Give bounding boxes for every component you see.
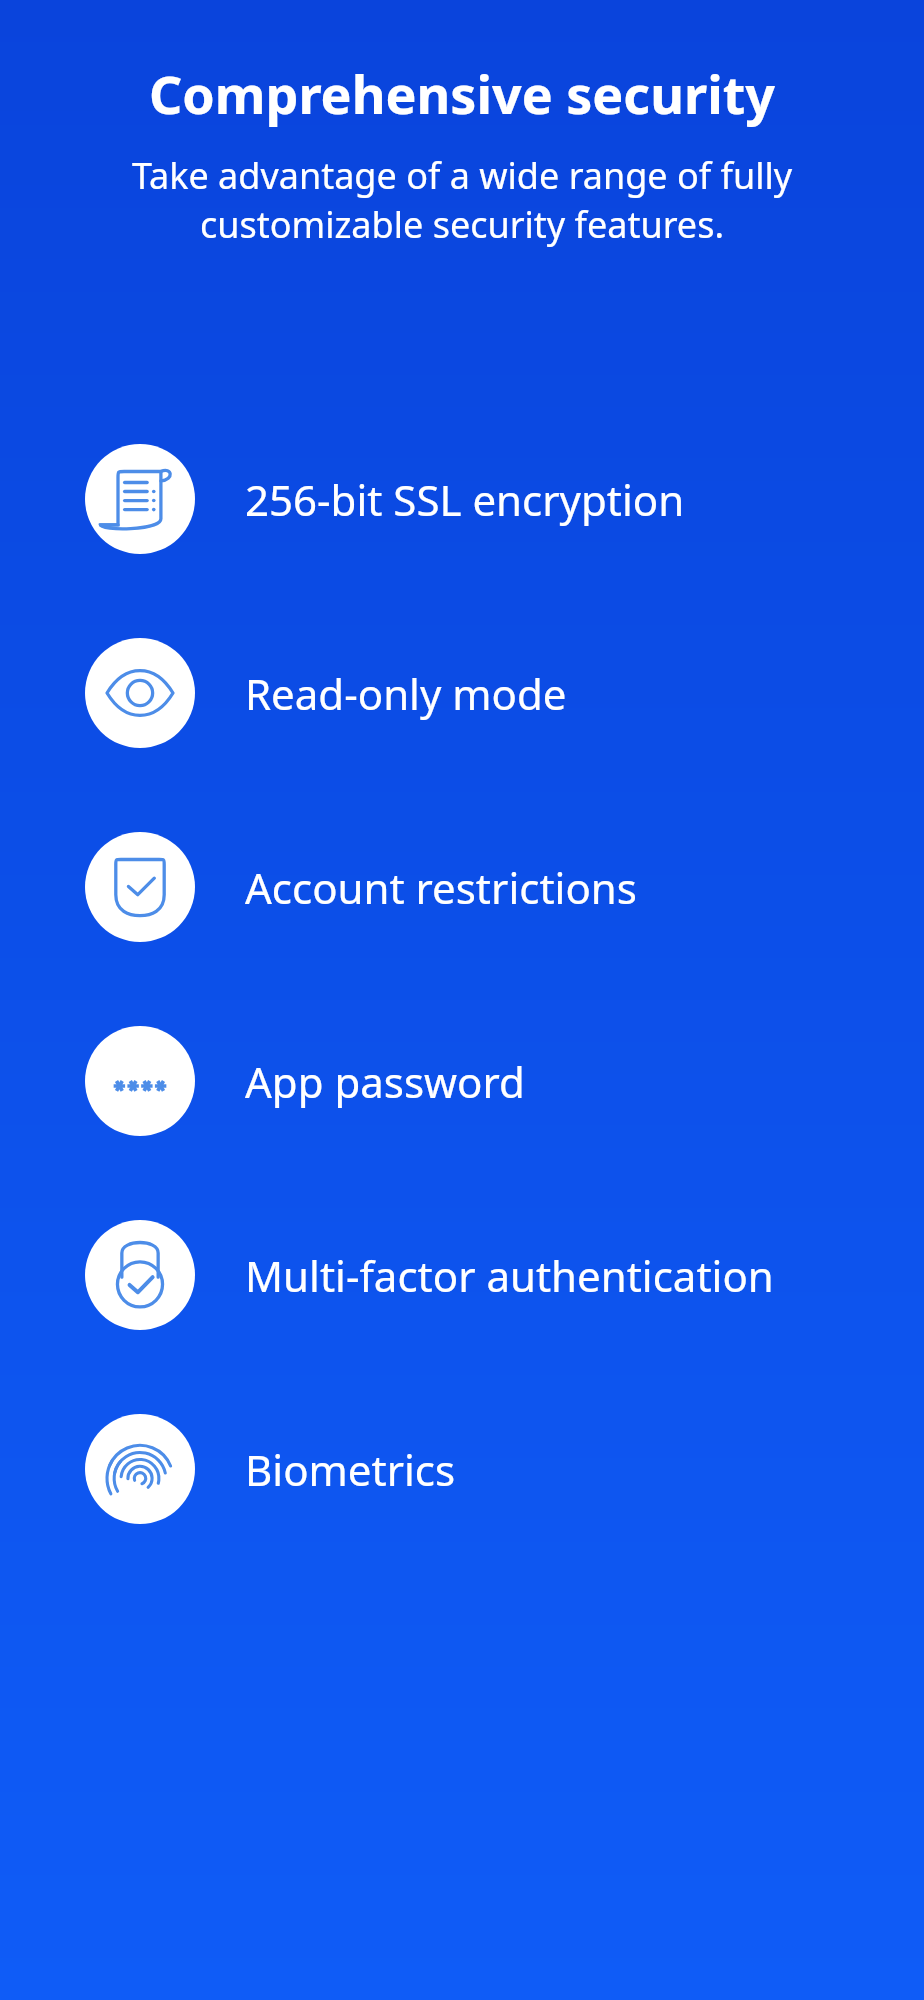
button[interactable]: Biometrics icon [0, 1414, 924, 1524]
staticText: App password [245, 1053, 525, 1110]
other: App password icon [85, 1026, 195, 1136]
other: Account restrictions icon [85, 832, 195, 942]
other: Multi-factor authentication icon [85, 1220, 195, 1330]
button[interactable]: Multi-factor authentication icon [0, 1220, 924, 1330]
other: 256-bit SSL encryption icon [85, 444, 195, 554]
staticText: Multi-factor authentication [245, 1247, 774, 1304]
button[interactable]: Read-only mode icon [0, 638, 924, 748]
button[interactable]: 256-bit SSL encryption icon [0, 444, 924, 554]
staticText: Comprehensive security [24, 58, 900, 129]
button[interactable]: Account restrictions icon [0, 832, 924, 942]
other: Read-only mode icon [85, 638, 195, 748]
other: Biometrics icon [85, 1414, 195, 1524]
staticText: Account restrictions [245, 859, 637, 916]
staticText: Read-only mode [245, 665, 567, 722]
staticText: Take advantage of a wide range of fully … [40, 151, 884, 248]
staticText: Biometrics [245, 1441, 456, 1498]
button[interactable]: App password icon [0, 1026, 924, 1136]
staticText: 256-bit SSL encryption [245, 471, 685, 528]
